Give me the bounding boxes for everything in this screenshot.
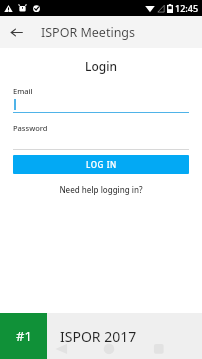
button[interactable]: LOG IN (13, 155, 189, 174)
button[interactable] (13, 96, 189, 113)
button[interactable]: Need help logging in? (13, 184, 189, 195)
staticText: Login (13, 58, 189, 74)
staticText: ISPOR 2017 (60, 327, 137, 346)
staticText: ISPOR Meetings (41, 24, 136, 41)
staticText: 12:45 (175, 2, 199, 14)
button[interactable]: Navigate up (0, 16, 32, 48)
button[interactable] (13, 133, 189, 150)
staticText: #1 (16, 327, 32, 345)
staticText: Password (13, 123, 48, 133)
staticText: Need help logging in? (59, 184, 143, 195)
staticText: LOG IN (86, 159, 117, 170)
staticText: Email (13, 86, 33, 96)
button[interactable]: #1 (0, 313, 47, 359)
